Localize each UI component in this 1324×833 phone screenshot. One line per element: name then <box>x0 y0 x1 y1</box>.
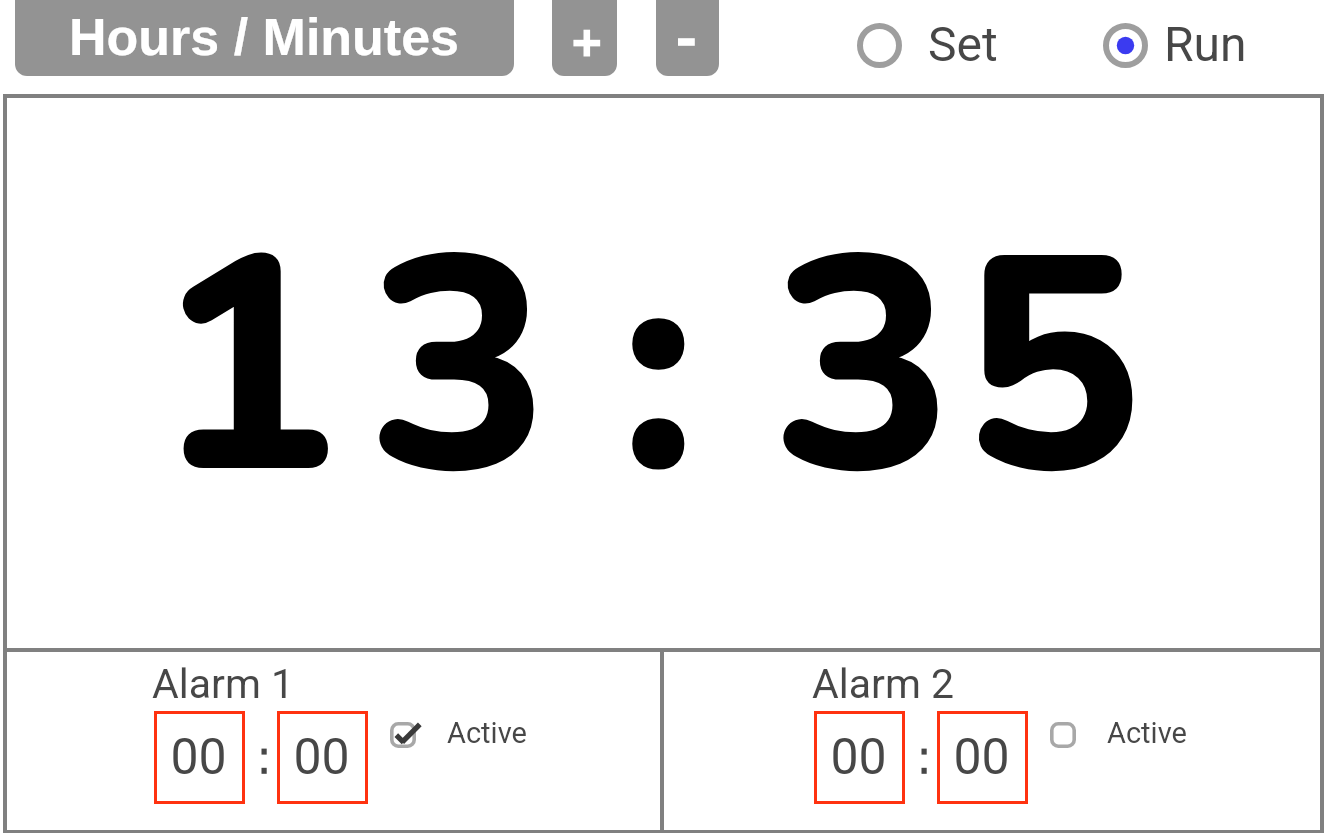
staticText: : <box>619 163 698 575</box>
button[interactable]: Active <box>390 711 526 804</box>
staticText: 5 <box>961 163 1143 575</box>
staticText: 00 <box>830 728 887 787</box>
button[interactable]: Set <box>857 17 1008 73</box>
button[interactable]: 00 <box>814 711 905 804</box>
button[interactable]: Decrease <box>656 0 719 76</box>
staticText: Run <box>1164 16 1247 72</box>
button[interactable]: Run <box>1103 17 1254 73</box>
staticText: Set <box>928 16 998 72</box>
staticText: 3 <box>772 163 954 575</box>
staticText: Active <box>1107 716 1187 750</box>
staticText: 00 <box>170 728 227 787</box>
staticText: Alarm 1 <box>152 660 295 708</box>
button[interactable]: Hours / Minutes <box>15 0 514 76</box>
button[interactable]: 00 <box>937 711 1028 804</box>
button[interactable]: Active <box>1050 711 1186 804</box>
staticText: 00 <box>293 728 350 787</box>
button[interactable]: 00 <box>154 711 245 804</box>
staticText: Hours / Minutes <box>69 8 460 66</box>
staticText: 1 <box>156 163 338 575</box>
staticText: 3 <box>368 163 550 575</box>
staticText: Active <box>447 716 527 750</box>
button[interactable]: 00 <box>277 711 368 804</box>
staticText: Alarm 2 <box>812 660 955 708</box>
staticText: 00 <box>953 728 1010 787</box>
button[interactable]: Increase <box>552 0 617 76</box>
